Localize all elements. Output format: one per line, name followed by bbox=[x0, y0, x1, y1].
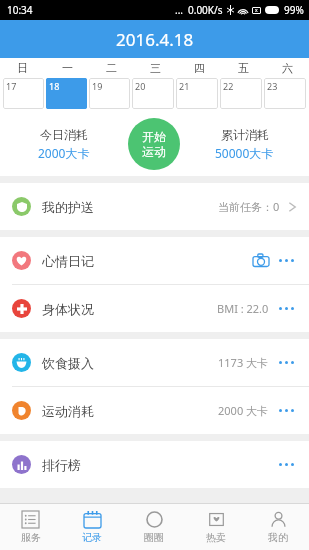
staticText: 运动 bbox=[142, 144, 166, 159]
button[interactable]: 20 bbox=[132, 78, 174, 109]
staticText: 开始 bbox=[142, 129, 166, 144]
staticText: 19 bbox=[92, 80, 103, 92]
staticText: 23 bbox=[267, 80, 278, 92]
staticText: 一 bbox=[62, 61, 73, 75]
button[interactable]: 心情日记 bbox=[0, 237, 309, 284]
button[interactable]: 记录 bbox=[61, 504, 123, 550]
staticText: 2000大卡 bbox=[38, 145, 90, 161]
button[interactable]: 圈圈 bbox=[123, 504, 185, 550]
button[interactable]: 22 bbox=[220, 78, 262, 109]
staticText: 六 bbox=[282, 61, 293, 75]
button[interactable]: More options bbox=[276, 304, 297, 313]
button[interactable]: More options bbox=[276, 406, 297, 415]
staticText: 身体状况 bbox=[42, 301, 94, 317]
staticText: 我的护送 bbox=[42, 199, 94, 215]
staticText: 今日消耗 bbox=[40, 127, 88, 142]
button[interactable]: 累计消耗 bbox=[180, 127, 309, 161]
staticText: 热卖 bbox=[206, 531, 226, 544]
staticText: 2016.4.18 bbox=[116, 28, 194, 51]
staticText: 心情日记 bbox=[42, 253, 94, 269]
button[interactable]: 21 bbox=[176, 78, 218, 109]
staticText: 我的 bbox=[268, 531, 288, 544]
staticText: 10:34 bbox=[7, 3, 33, 17]
staticText: 运动消耗 bbox=[42, 403, 94, 419]
staticText: x bbox=[255, 7, 258, 14]
staticText: 日 bbox=[17, 61, 28, 75]
staticText: 50000大卡 bbox=[215, 145, 274, 161]
button[interactable]: 19 bbox=[89, 78, 130, 109]
button[interactable]: 今日消耗 bbox=[0, 127, 128, 161]
button[interactable]: 排行榜 bbox=[0, 441, 309, 488]
staticText: 五 bbox=[238, 61, 249, 75]
staticText: 22 bbox=[223, 80, 234, 92]
staticText: 三 bbox=[150, 61, 161, 75]
other: Open bbox=[288, 200, 297, 214]
button[interactable]: 23 bbox=[264, 78, 306, 109]
button[interactable]: 我的护送 bbox=[0, 183, 309, 230]
staticText: 排行榜 bbox=[42, 457, 81, 473]
button[interactable]: More options bbox=[276, 256, 297, 265]
staticText: ... bbox=[175, 3, 184, 17]
staticText: 17 bbox=[6, 80, 17, 92]
button[interactable]: Take photo bbox=[253, 254, 269, 267]
staticText: 圈圈 bbox=[144, 531, 164, 544]
button[interactable]: 17 bbox=[3, 78, 44, 109]
button[interactable]: 我的 bbox=[247, 504, 309, 550]
button[interactable]: 饮食摄入 bbox=[0, 339, 309, 386]
staticText: 当前任务：0 bbox=[218, 199, 280, 214]
staticText: 累计消耗 bbox=[221, 127, 269, 142]
button[interactable]: 18 bbox=[46, 78, 87, 109]
staticText: 21 bbox=[179, 80, 190, 92]
staticText: 饮食摄入 bbox=[42, 355, 94, 371]
button[interactable]: 热卖 bbox=[185, 504, 247, 550]
staticText: 18 bbox=[49, 80, 60, 92]
button[interactable]: 开始 bbox=[128, 118, 180, 170]
button[interactable]: 身体状况 bbox=[0, 285, 309, 332]
staticText: 四 bbox=[194, 61, 205, 75]
button[interactable]: More options bbox=[276, 460, 297, 469]
staticText: 0.00K/s bbox=[188, 3, 223, 17]
staticText: 1173 大卡 bbox=[218, 355, 269, 370]
staticText: BMI : 22.0 bbox=[217, 301, 269, 316]
button[interactable]: 运动消耗 bbox=[0, 387, 309, 434]
staticText: 99% bbox=[284, 3, 304, 17]
staticText: 二 bbox=[106, 61, 117, 75]
staticText: 2000 大卡 bbox=[218, 403, 269, 418]
staticText: 服务 bbox=[21, 531, 41, 544]
button[interactable]: 服务 bbox=[0, 504, 61, 550]
button[interactable]: More options bbox=[276, 358, 297, 367]
staticText: 20 bbox=[135, 80, 146, 92]
staticText: 记录 bbox=[82, 531, 102, 544]
